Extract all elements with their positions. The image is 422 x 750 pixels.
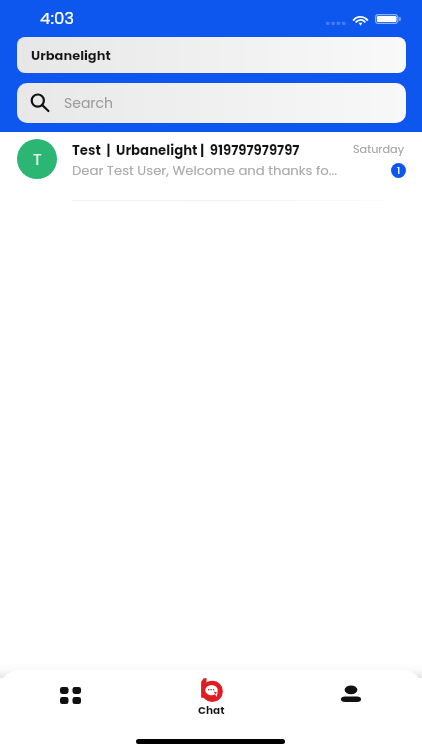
staticText: Dear Test User, Welcome and thanks fo... bbox=[72, 161, 338, 179]
staticText: Test | Urbanelight | 919797979797 bbox=[72, 141, 300, 160]
staticText: T bbox=[33, 148, 42, 170]
staticText: Search bbox=[64, 93, 114, 113]
staticText: Urbanelight bbox=[31, 46, 111, 64]
button[interactable]: Urbanelight bbox=[17, 37, 406, 73]
button[interactable]: Apps bbox=[46, 671, 94, 719]
button[interactable]: Search bbox=[17, 83, 406, 123]
button[interactable]: Profile bbox=[327, 670, 375, 718]
staticText: 4:03 bbox=[40, 7, 74, 30]
button[interactable]: T bbox=[0, 132, 422, 200]
staticText: 1 bbox=[397, 165, 400, 177]
button[interactable]: Chat bbox=[175, 670, 247, 718]
staticText: Chat bbox=[198, 703, 225, 718]
staticText: Saturday bbox=[353, 141, 404, 157]
